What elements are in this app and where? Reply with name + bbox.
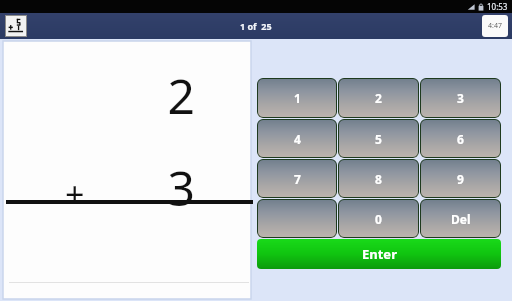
button[interactable]: 8 (338, 159, 419, 198)
staticText: 3 (457, 90, 464, 106)
staticText: 7 (294, 171, 301, 187)
button[interactable]: 1 (257, 78, 337, 118)
staticText: 10:53 (487, 1, 508, 12)
button[interactable]: 9 (420, 159, 501, 198)
staticText: 1 (294, 90, 301, 106)
button[interactable]: 6 (420, 119, 501, 158)
button[interactable]: 2 (338, 78, 419, 118)
button[interactable]: App icon (5, 15, 27, 37)
staticText: 6 (457, 131, 464, 147)
button[interactable]: 7 (257, 159, 337, 198)
button[interactable]: 3 (420, 78, 501, 118)
button[interactable]: 4 (257, 119, 337, 158)
staticText: 2 (375, 90, 382, 106)
staticText: 4:47 (488, 21, 502, 31)
staticText: + (65, 171, 85, 217)
button[interactable]: 5 (338, 119, 419, 158)
button[interactable]: 4:47 (482, 15, 508, 37)
staticText: 2 (123, 63, 195, 128)
staticText: 3 (123, 155, 195, 220)
button[interactable] (257, 199, 337, 238)
staticText: 0 (375, 211, 382, 227)
staticText: Enter (362, 245, 397, 263)
staticText: 4 (294, 131, 301, 147)
staticText: 5 (375, 131, 382, 147)
button[interactable]: Del (420, 199, 501, 238)
staticText: 8 (375, 171, 382, 187)
button[interactable]: 2 (3, 41, 251, 299)
staticText: Del (451, 211, 471, 227)
button[interactable]: Enter (257, 239, 501, 269)
staticText: 9 (457, 171, 464, 187)
button[interactable]: 0 (338, 199, 419, 238)
staticText: 1 of 25 (240, 20, 272, 32)
